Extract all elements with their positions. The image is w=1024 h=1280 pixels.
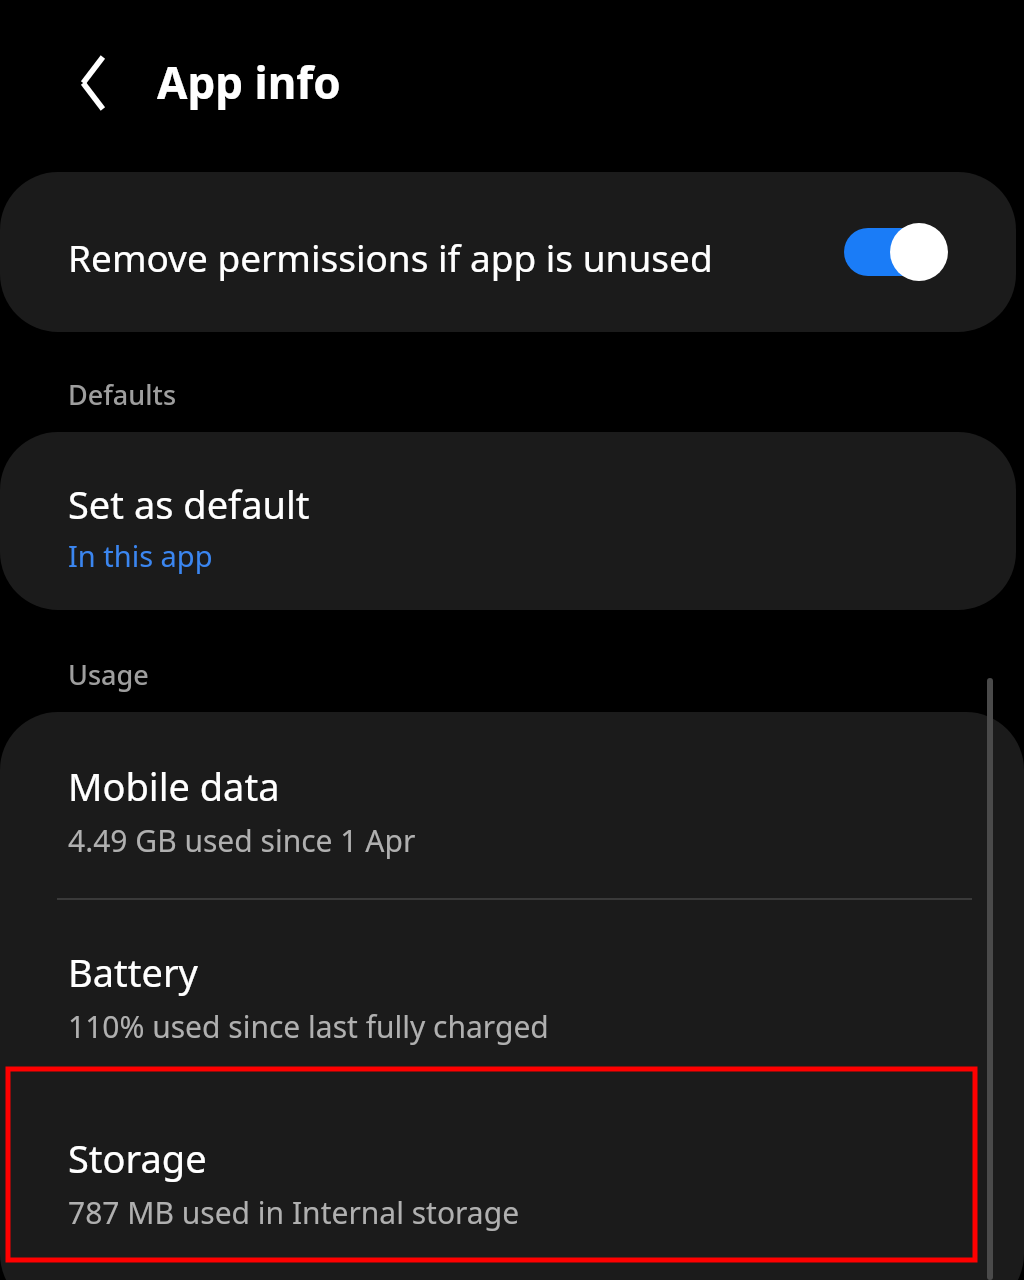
staticText: Battery xyxy=(68,946,198,998)
button[interactable]: Mobile data xyxy=(0,712,1024,898)
staticText: Remove permissions if app is unused xyxy=(68,232,713,282)
button[interactable]: Battery xyxy=(0,900,1024,1086)
staticText: Storage xyxy=(68,1132,207,1184)
staticText: 4.49 GB used since 1 Apr xyxy=(68,820,416,861)
button[interactable]: Remove permissions if app is unused xyxy=(0,172,1016,332)
staticText: App info xyxy=(157,52,341,112)
staticText: Mobile data xyxy=(68,760,280,812)
staticText: Usage xyxy=(68,656,149,693)
button[interactable]: Remove permissions toggle xyxy=(838,212,950,292)
button[interactable]: Back xyxy=(58,40,128,126)
staticText: Set as default xyxy=(68,478,310,530)
staticText: 110% used since last fully charged xyxy=(68,1006,549,1047)
staticText: Defaults xyxy=(68,376,176,413)
button[interactable]: Set as default xyxy=(0,432,1016,610)
staticText: 787 MB used in Internal storage xyxy=(68,1192,520,1233)
staticText: In this app xyxy=(68,536,213,575)
button[interactable]: Storage xyxy=(0,1086,1024,1272)
